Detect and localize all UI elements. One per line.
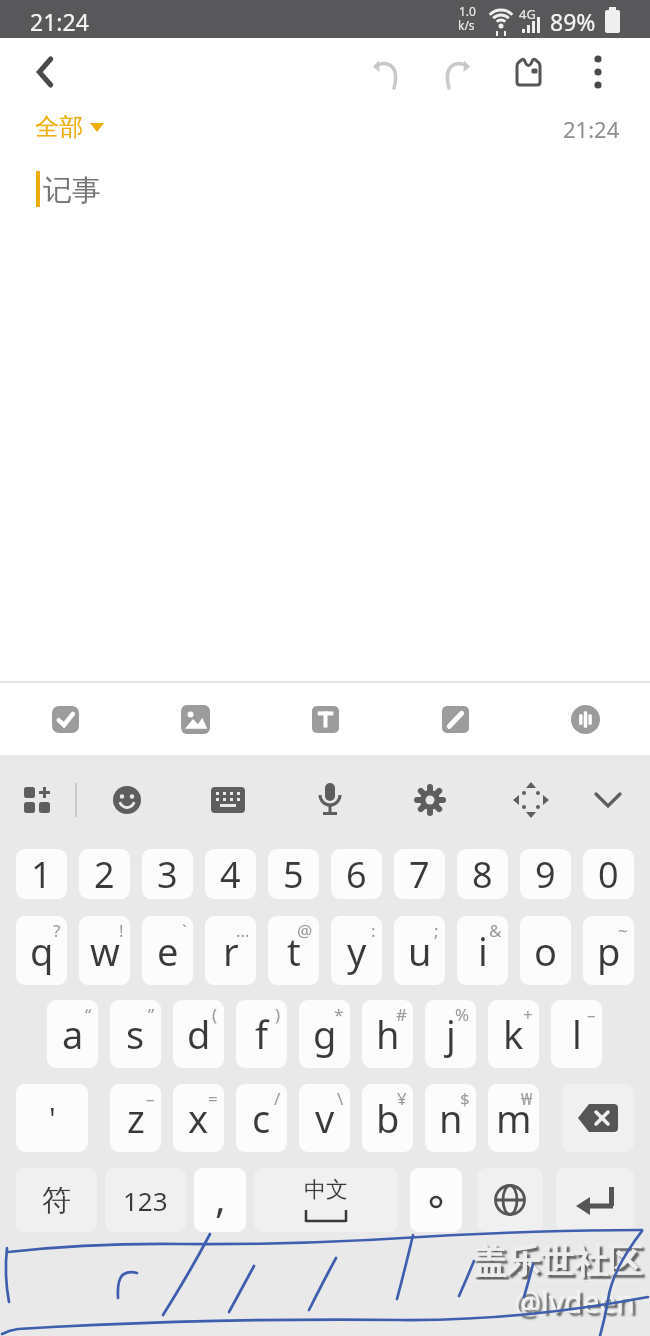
button[interactable]: e	[142, 916, 193, 985]
staticText: k/s	[458, 17, 475, 33]
staticText: 5	[283, 850, 304, 899]
button[interactable]	[360, 48, 410, 96]
button[interactable]: p	[583, 916, 634, 985]
button[interactable]: f	[236, 1000, 287, 1068]
button[interactable]: r	[205, 916, 256, 985]
button[interactable]: t	[268, 916, 319, 985]
button[interactable]: w	[79, 916, 130, 985]
button[interactable]	[410, 1168, 462, 1232]
button[interactable]: b	[362, 1084, 413, 1152]
staticText: 符	[42, 1182, 71, 1219]
staticText: r	[223, 925, 239, 977]
button[interactable]: h	[362, 1000, 413, 1068]
staticText: d	[187, 1008, 211, 1060]
staticText: 2	[94, 850, 115, 899]
button[interactable]	[553, 687, 617, 751]
button[interactable]: m	[488, 1084, 539, 1152]
staticText: ¥	[397, 1087, 407, 1110]
button[interactable]: q	[16, 916, 67, 985]
button[interactable]	[423, 687, 487, 751]
staticText: “	[85, 1003, 92, 1026]
staticText: !	[119, 919, 124, 942]
staticText: c	[252, 1092, 271, 1144]
staticText: 全部	[35, 112, 83, 142]
button[interactable]	[433, 48, 483, 96]
button[interactable]: 6	[331, 849, 382, 899]
staticText: n	[439, 1092, 463, 1144]
button[interactable]: v	[299, 1084, 350, 1152]
button[interactable]: d	[173, 1000, 224, 1068]
button[interactable]	[583, 775, 633, 825]
button[interactable]	[477, 1168, 543, 1232]
button[interactable]	[293, 687, 357, 751]
button[interactable]: 9	[520, 849, 571, 899]
staticText: $	[460, 1087, 470, 1110]
staticText: )	[275, 1003, 281, 1026]
button[interactable]: y	[331, 916, 382, 985]
staticText: j	[446, 1008, 456, 1060]
button[interactable]	[33, 687, 97, 751]
button[interactable]	[556, 1168, 634, 1232]
button[interactable]: j	[425, 1000, 476, 1068]
staticText: `	[182, 919, 187, 942]
staticText: 4	[220, 850, 241, 899]
button[interactable]: 0	[583, 849, 634, 899]
button[interactable]: s	[110, 1000, 161, 1068]
button[interactable]	[575, 48, 621, 96]
staticText: p	[597, 925, 621, 977]
staticText: &	[489, 919, 502, 942]
button[interactable]: 7	[394, 849, 445, 899]
staticText: @	[297, 919, 313, 942]
button[interactable]: k	[488, 1000, 539, 1068]
button[interactable]	[405, 775, 455, 825]
button[interactable]: 全部	[35, 112, 104, 142]
staticText: s	[126, 1008, 145, 1060]
button[interactable]: x	[173, 1084, 224, 1152]
staticText: ?	[53, 919, 61, 942]
staticText: 7	[409, 850, 430, 899]
button[interactable]: l	[551, 1000, 602, 1068]
button[interactable]: 8	[457, 849, 508, 899]
button[interactable]: 2	[79, 849, 130, 899]
button[interactable]: g	[299, 1000, 350, 1068]
staticText: –	[587, 1003, 596, 1026]
staticText: '	[49, 1098, 56, 1139]
button[interactable]: 1	[16, 849, 67, 899]
staticText: q	[30, 925, 54, 977]
button[interactable]: 中文	[254, 1168, 398, 1232]
button[interactable]	[203, 775, 253, 825]
button[interactable]: 123	[105, 1168, 186, 1232]
staticText: +	[523, 1003, 533, 1026]
button[interactable]	[562, 1084, 634, 1152]
button[interactable]: '	[16, 1084, 88, 1152]
staticText: 9	[535, 850, 556, 899]
staticText: 记事	[43, 172, 101, 209]
button[interactable]: i	[457, 916, 508, 985]
button[interactable]	[505, 48, 551, 96]
button[interactable]	[20, 48, 70, 96]
staticText: 6	[346, 850, 367, 899]
button[interactable]: c	[236, 1084, 287, 1152]
staticText: ,	[215, 1170, 226, 1224]
button[interactable]: a	[47, 1000, 98, 1068]
staticText: m	[496, 1092, 532, 1144]
button[interactable]: z	[110, 1084, 161, 1152]
staticText: w	[90, 925, 120, 977]
button[interactable]	[102, 775, 152, 825]
button[interactable]: o	[520, 916, 571, 985]
staticText: b	[376, 1092, 400, 1144]
button[interactable]	[163, 687, 227, 751]
button[interactable]: ,	[194, 1168, 246, 1232]
button[interactable]: 4	[205, 849, 256, 899]
button[interactable]: 5	[268, 849, 319, 899]
button[interactable]	[305, 775, 355, 825]
staticText: 中文	[304, 1176, 348, 1204]
button[interactable]	[506, 775, 556, 825]
staticText: v	[315, 1092, 335, 1144]
button[interactable]: u	[394, 916, 445, 985]
button[interactable]	[12, 775, 62, 825]
button[interactable]: n	[425, 1084, 476, 1152]
button[interactable]: 3	[142, 849, 193, 899]
button[interactable]: 符	[16, 1168, 97, 1232]
staticText: –	[146, 1087, 155, 1110]
